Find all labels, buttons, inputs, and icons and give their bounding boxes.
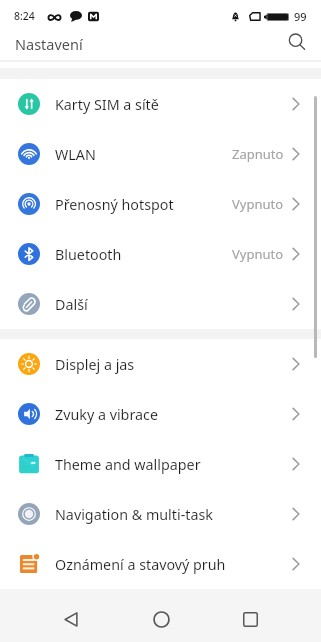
button[interactable]: Karty SIM a sítě [0,79,321,129]
staticText: Přenosný hotspot [55,195,174,214]
staticText: Vypnuto [232,245,284,263]
staticText: Nastavení [15,34,83,54]
staticText: Navigation & multi-task [55,505,213,524]
button[interactable]: WLAN [0,129,321,179]
staticText: Bluetooth [55,245,122,264]
button[interactable]: Recents [228,597,272,641]
button[interactable]: Home [139,597,183,641]
staticText: 8:24 [14,9,35,23]
button[interactable]: Back [49,597,93,641]
staticText: Zvuky a vibrace [55,405,158,424]
staticText: Displej a jas [55,355,135,374]
staticText: Karty SIM a sítě [55,95,159,114]
staticText: WLAN [55,145,96,164]
button[interactable]: Theme and wallpaper [0,439,321,489]
staticText: Theme and wallpaper [55,455,201,474]
button[interactable]: Search [282,27,312,57]
button[interactable]: Přenosný hotspot [0,179,321,229]
button[interactable]: Další [0,279,321,329]
staticText: Zapnuto [232,145,284,163]
button[interactable]: Oznámení a stavový pruh [0,539,321,589]
button[interactable]: Displej a jas [0,339,321,389]
button[interactable]: Navigation & multi-task [0,489,321,539]
staticText: Další [55,295,88,314]
staticText: 99 [294,9,307,24]
button[interactable]: Bluetooth [0,229,321,279]
staticText: Vypnuto [232,195,284,213]
staticText: Oznámení a stavový pruh [55,555,226,574]
button[interactable]: Zvuky a vibrace [0,389,321,439]
